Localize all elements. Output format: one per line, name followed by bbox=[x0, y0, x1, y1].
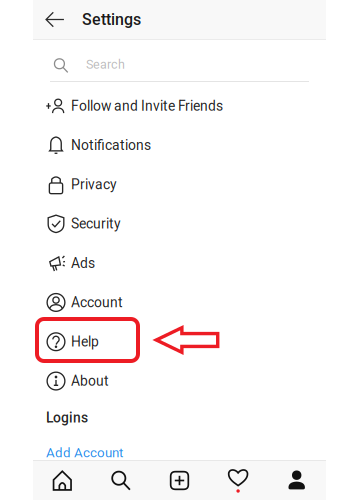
staticText: Account bbox=[71, 294, 123, 311]
button[interactable]: About bbox=[33, 361, 326, 401]
button[interactable]: Search bbox=[33, 40, 326, 82]
button[interactable]: Add Account bbox=[33, 435, 326, 471]
staticText: Security bbox=[71, 216, 121, 232]
button[interactable]: Home bbox=[33, 461, 92, 500]
button[interactable]: Privacy bbox=[33, 165, 326, 204]
staticText: Notifications bbox=[71, 137, 151, 153]
button[interactable]: Follow and Invite Friends bbox=[33, 86, 326, 126]
button[interactable]: Help bbox=[33, 322, 326, 361]
staticText: Ads bbox=[71, 255, 95, 271]
button[interactable]: Activity bbox=[209, 461, 267, 500]
staticText: Help bbox=[71, 334, 99, 350]
staticText: Search bbox=[86, 57, 125, 72]
staticText: Add Account bbox=[46, 445, 123, 460]
staticText: About bbox=[71, 373, 109, 389]
staticText: Settings bbox=[82, 10, 141, 29]
staticText: Privacy bbox=[71, 176, 117, 193]
button[interactable]: New Post bbox=[150, 461, 209, 500]
button[interactable]: Search bbox=[92, 461, 150, 500]
button[interactable]: Ads bbox=[33, 243, 326, 283]
button[interactable]: Account bbox=[33, 283, 326, 322]
staticText: Follow and Invite Friends bbox=[71, 98, 223, 114]
button[interactable]: Profile bbox=[267, 461, 326, 500]
button[interactable]: Security bbox=[33, 204, 326, 243]
staticText: Logins bbox=[46, 410, 88, 426]
button[interactable]: Notifications bbox=[33, 126, 326, 165]
button[interactable]: Back bbox=[35, 0, 75, 39]
